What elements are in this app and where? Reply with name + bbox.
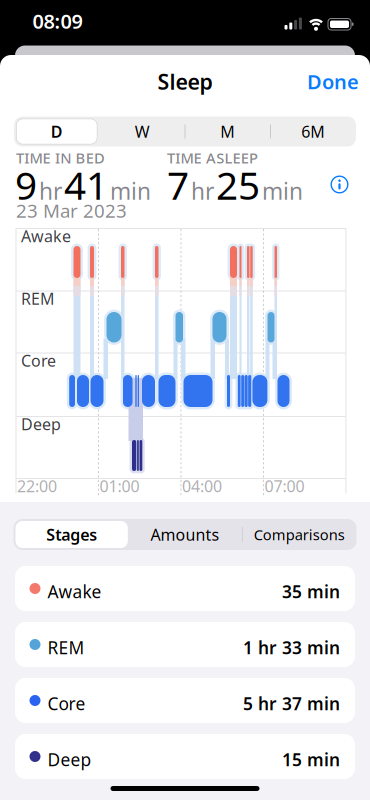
staticText: 01:00	[99, 475, 139, 497]
staticText: 5 hr 37 min	[243, 692, 340, 715]
button[interactable]: Amounts	[135, 519, 235, 550]
staticText: hr	[39, 176, 62, 206]
staticText: Done	[307, 68, 359, 95]
staticText: D	[51, 121, 63, 142]
staticText: Core	[47, 692, 85, 715]
button[interactable]: Comparisons	[243, 519, 355, 550]
staticText: Deep	[47, 748, 91, 771]
button[interactable]: W	[112, 116, 172, 146]
staticText: 23 Mar 2023	[16, 198, 127, 223]
staticText: REM	[47, 636, 84, 659]
staticText: min	[110, 176, 151, 206]
staticText: Awake	[47, 580, 101, 603]
staticText: 7	[167, 159, 189, 210]
button[interactable]: Stages	[15, 521, 128, 548]
button[interactable]: M	[198, 116, 258, 146]
staticText: 15 min	[282, 748, 340, 771]
staticText: Awake	[21, 225, 71, 247]
staticText: Stages	[46, 524, 97, 545]
staticText: 35 min	[282, 580, 340, 603]
staticText: TIME IN BED	[16, 148, 105, 167]
staticText: 22:00	[17, 475, 57, 497]
staticText: W	[135, 121, 150, 142]
staticText: 9	[15, 159, 37, 210]
button[interactable]: 6M	[283, 116, 343, 146]
staticText: 6M	[301, 121, 325, 142]
staticText: 07:00	[264, 475, 304, 497]
staticText: Amounts	[150, 524, 219, 545]
staticText: 08:09	[32, 8, 82, 34]
staticText: 1 hr 33 min	[243, 636, 340, 659]
staticText: min	[262, 176, 303, 206]
staticText: Comparisons	[254, 525, 345, 544]
button[interactable]: Info	[327, 172, 351, 196]
staticText: 41	[64, 159, 108, 210]
staticText: Sleep	[157, 67, 212, 96]
staticText: M	[220, 121, 235, 142]
staticText: Core	[21, 350, 56, 371]
button[interactable]: D	[16, 118, 97, 144]
staticText: hr	[191, 176, 214, 206]
staticText: 25	[216, 159, 260, 210]
button[interactable]: Done	[307, 68, 359, 95]
staticText: Deep	[21, 413, 61, 435]
staticText: REM	[21, 288, 55, 309]
staticText: 04:00	[182, 475, 222, 497]
staticText: TIME ASLEEP	[167, 148, 258, 167]
